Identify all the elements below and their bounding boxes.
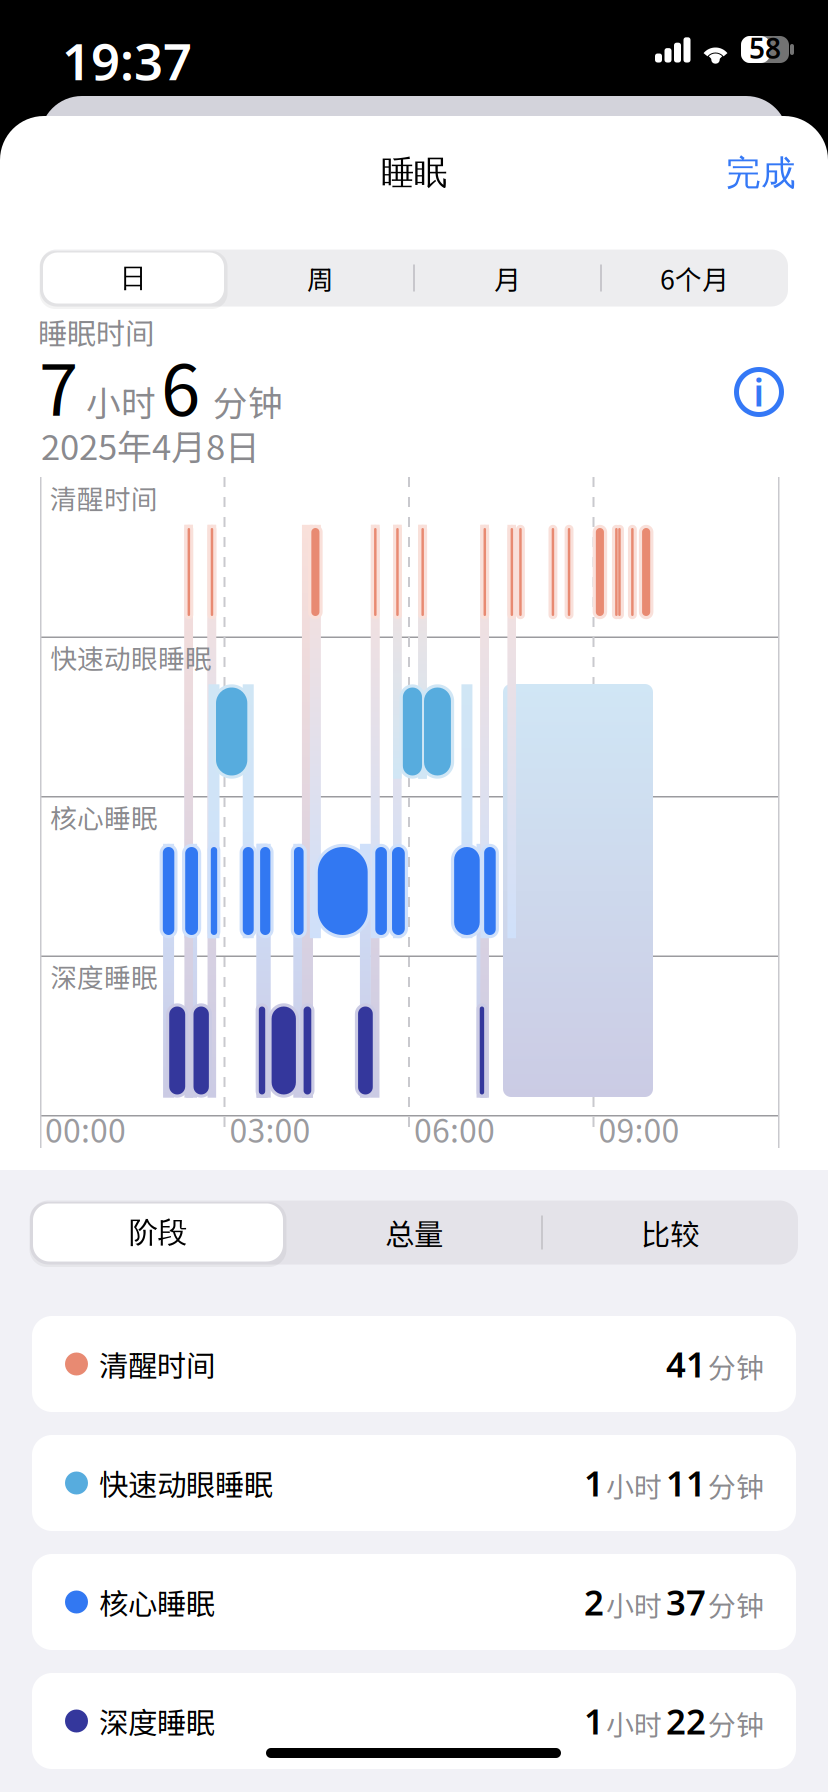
staticText: 分钟: [213, 376, 283, 426]
staticText: 11: [666, 1459, 706, 1507]
staticText: 完成: [726, 151, 796, 195]
button[interactable]: 完成: [701, 95, 821, 195]
staticText: 2: [584, 1578, 604, 1626]
staticText: 41: [666, 1340, 706, 1388]
staticText: 小时: [606, 1584, 662, 1625]
staticText: 核心睡眠: [50, 797, 158, 836]
staticText: 37: [666, 1578, 706, 1626]
staticText: 阶段: [129, 1214, 187, 1251]
staticText: 快速动眼睡眠: [99, 1462, 273, 1504]
staticText: 月: [494, 259, 521, 297]
staticText: 6: [161, 334, 200, 436]
staticText: 深度睡眠: [99, 1700, 215, 1742]
staticText: 周: [307, 259, 334, 297]
staticText: 小时: [606, 1465, 662, 1506]
staticText: 总量: [385, 1211, 443, 1254]
staticText: i: [753, 367, 764, 417]
staticText: 分钟: [708, 1465, 764, 1506]
staticText: 09:00: [598, 1106, 679, 1152]
staticText: 1: [584, 1697, 604, 1745]
button[interactable]: 6个月: [601, 249, 788, 306]
staticText: 清醒时间: [50, 478, 158, 517]
staticText: 2025年4月8日: [41, 420, 260, 470]
staticText: 分钟: [708, 1584, 764, 1625]
staticText: 22: [666, 1697, 706, 1745]
staticText: 快速动眼睡眠: [50, 638, 212, 676]
staticText: 58: [749, 29, 781, 67]
button[interactable]: 关于睡眠: [728, 361, 790, 423]
button[interactable]: 日: [40, 249, 227, 306]
staticText: 1: [584, 1459, 604, 1507]
button[interactable]: 深度睡眠: [32, 1673, 796, 1769]
staticText: 睡眠时间: [38, 310, 154, 353]
staticText: 睡眠: [381, 152, 447, 194]
button[interactable]: 快速动眼睡眠: [32, 1435, 796, 1531]
button[interactable]: 阶段: [30, 1200, 286, 1264]
staticText: 6个月: [660, 259, 729, 297]
staticText: 分钟: [708, 1703, 764, 1744]
staticText: 03:00: [229, 1106, 310, 1152]
staticText: 比较: [641, 1211, 699, 1254]
button[interactable]: 清醒时间: [32, 1316, 796, 1412]
staticText: 7: [39, 334, 78, 436]
button[interactable]: 核心睡眠: [32, 1554, 796, 1650]
button[interactable]: 比较: [542, 1200, 798, 1264]
staticText: 小时: [86, 376, 156, 426]
staticText: 00:00: [45, 1106, 126, 1152]
button[interactable]: 周: [227, 249, 414, 306]
staticText: 小时: [606, 1703, 662, 1744]
button[interactable]: 总量: [286, 1200, 542, 1264]
button[interactable]: 月: [414, 249, 601, 306]
staticText: 清醒时间: [99, 1343, 215, 1385]
staticText: 日: [120, 261, 147, 295]
staticText: 分钟: [708, 1346, 764, 1387]
staticText: 19:37: [62, 26, 192, 95]
staticText: 深度睡眠: [50, 957, 158, 995]
staticText: 06:00: [414, 1106, 495, 1152]
staticText: 核心睡眠: [99, 1581, 215, 1623]
